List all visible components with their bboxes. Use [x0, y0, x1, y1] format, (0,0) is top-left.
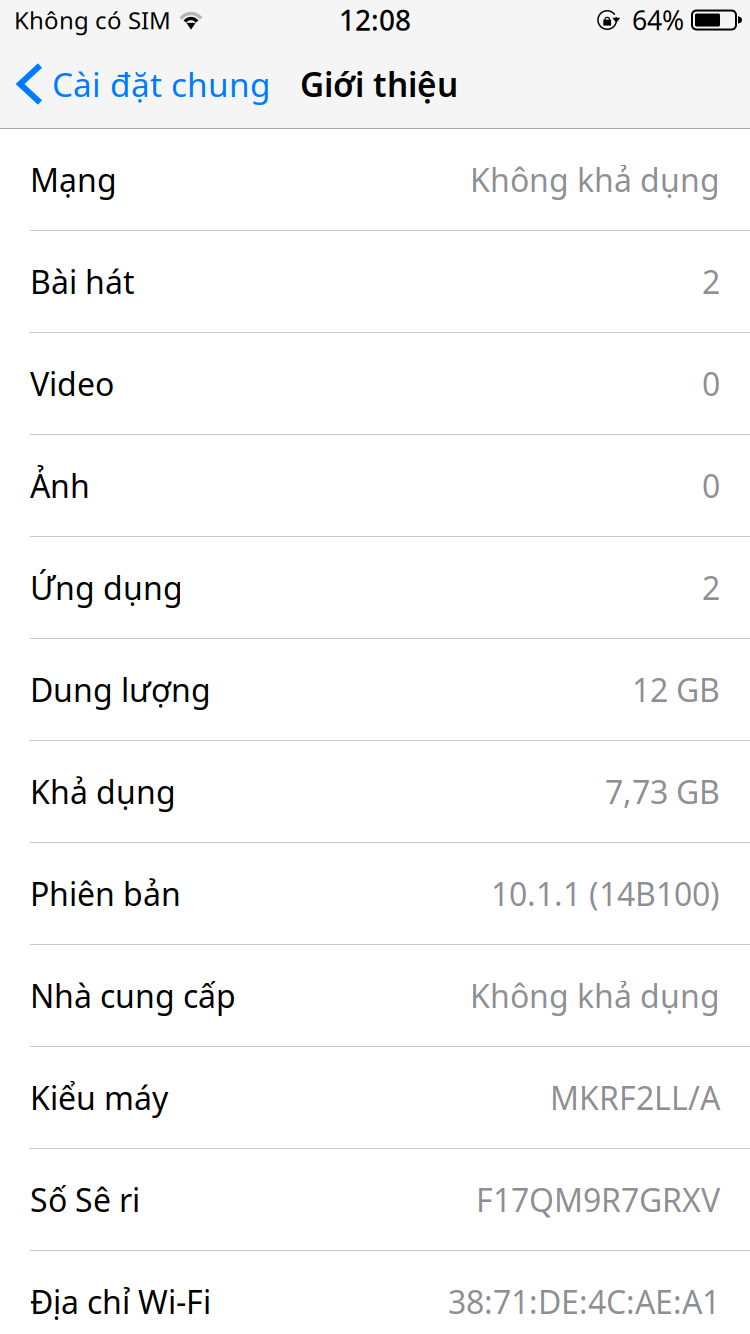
staticText: 7,73 GB: [605, 770, 720, 813]
button[interactable]: Dung lượng: [0, 639, 750, 740]
staticText: Cài đặt chung: [52, 62, 271, 106]
staticText: 0: [702, 362, 720, 405]
button[interactable]: Địa chỉ Wi-Fi: [0, 1251, 750, 1334]
staticText: 64%: [632, 2, 684, 38]
staticText: 12:08: [339, 1, 411, 39]
staticText: Bài hát: [30, 260, 135, 303]
staticText: Khả dụng: [30, 770, 176, 813]
staticText: 2: [702, 566, 720, 609]
staticText: 12 GB: [632, 668, 720, 711]
staticText: Dung lượng: [30, 668, 211, 711]
staticText: Mạng: [30, 158, 117, 201]
staticText: Không khả dụng: [470, 974, 720, 1017]
button[interactable]: Mạng: [0, 129, 750, 230]
staticText: F17QM9R7GRXV: [476, 1178, 720, 1221]
staticText: 0: [702, 464, 720, 507]
button[interactable]: Khả dụng: [0, 741, 750, 842]
staticText: Địa chỉ Wi-Fi: [30, 1280, 211, 1323]
button[interactable]: Ứng dụng: [0, 537, 750, 638]
staticText: Số Sê ri: [30, 1178, 140, 1221]
staticText: Video: [30, 362, 114, 405]
staticText: 38:71:DE:4C:AE:A1: [448, 1280, 720, 1323]
staticText: Giới thiệu: [300, 62, 458, 106]
staticText: Không khả dụng: [470, 158, 720, 201]
button[interactable]: Phiên bản: [0, 843, 750, 944]
button[interactable]: Cài đặt chung: [0, 40, 277, 128]
button[interactable]: Kiểu máy: [0, 1047, 750, 1148]
staticText: MKRF2LL/A: [550, 1076, 720, 1119]
staticText: Kiểu máy: [30, 1076, 168, 1119]
button[interactable]: Số Sê ri: [0, 1149, 750, 1250]
staticText: Nhà cung cấp: [30, 974, 236, 1017]
button[interactable]: Nhà cung cấp: [0, 945, 750, 1046]
staticText: Phiên bản: [30, 872, 181, 915]
staticText: Ảnh: [30, 464, 90, 507]
staticText: 2: [702, 260, 720, 303]
staticText: Ứng dụng: [30, 566, 183, 609]
button[interactable]: Video: [0, 333, 750, 434]
staticText: Không có SIM: [14, 4, 171, 36]
button[interactable]: Ảnh: [0, 435, 750, 536]
button[interactable]: Bài hát: [0, 231, 750, 332]
staticText: 10.1.1 (14B100): [491, 872, 720, 915]
